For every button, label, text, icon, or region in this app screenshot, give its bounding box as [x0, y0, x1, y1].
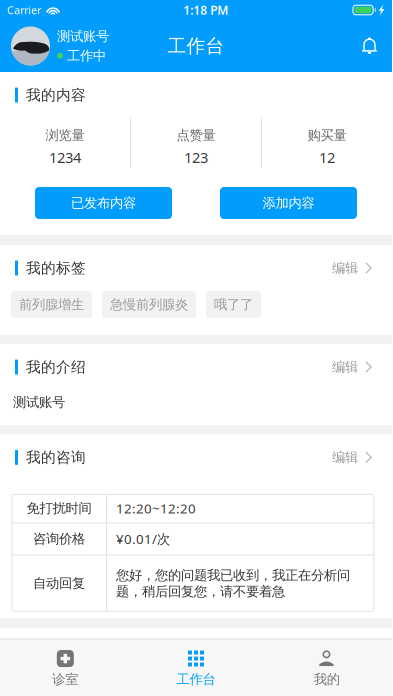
staticText: 点赞量 — [176, 127, 215, 143]
staticText: 12 — [319, 147, 335, 167]
staticText: 1:18 PM — [183, 2, 228, 18]
staticText: 测试账号 — [13, 394, 65, 410]
button[interactable]: 测试账号 — [11, 26, 109, 65]
button[interactable]: 诊室 — [0, 639, 131, 689]
button[interactable]: 已发布内容 — [35, 187, 172, 219]
staticText: 自动回复 — [33, 575, 85, 592]
staticText: 添加内容 — [262, 195, 314, 211]
button[interactable]: 编辑 — [332, 441, 372, 474]
staticText: Carrier — [7, 3, 41, 17]
staticText: 咨询价格 — [33, 531, 85, 547]
staticText: 急慢前列腺炎 — [110, 296, 188, 313]
staticText: 我的内容 — [26, 86, 86, 104]
staticText: 您好，您的问题我已收到，我正在分析问题，稍后回复您，请不要着急 — [116, 567, 350, 600]
staticText: 123 — [184, 147, 208, 167]
staticText: 免打扰时间 — [26, 500, 91, 517]
staticText: 编辑 — [332, 449, 358, 466]
button[interactable]: 添加内容 — [220, 187, 357, 219]
staticText: 1234 — [49, 147, 81, 167]
staticText: 浏览量 — [45, 127, 84, 143]
staticText: 前列腺增生 — [19, 296, 84, 313]
button[interactable]: Notifications — [354, 30, 386, 62]
staticText: 已发布内容 — [71, 195, 136, 211]
staticText: 编辑 — [332, 359, 358, 375]
staticText: 工作台 — [167, 34, 224, 57]
button[interactable]: 我的 — [261, 639, 392, 689]
staticText: 编辑 — [332, 260, 358, 276]
staticText: 我的标签 — [26, 259, 86, 277]
staticText: 测试账号 — [57, 28, 109, 44]
staticText: 12:20~12:20 — [116, 499, 196, 517]
staticText: 工作台 — [176, 671, 215, 687]
button[interactable]: 编辑 — [332, 252, 372, 284]
staticText: 我的咨询 — [26, 448, 86, 466]
staticText: 哦了了 — [214, 296, 253, 313]
button[interactable]: 工作台 — [131, 639, 261, 689]
staticText: 诊室 — [52, 671, 78, 687]
staticText: 工作中 — [67, 47, 106, 64]
staticText: 购买量 — [307, 127, 346, 143]
staticText: 我的介绍 — [26, 358, 86, 376]
staticText: 我的 — [314, 671, 340, 687]
button[interactable]: 编辑 — [332, 351, 372, 383]
staticText: ¥0.01/次 — [116, 530, 170, 548]
